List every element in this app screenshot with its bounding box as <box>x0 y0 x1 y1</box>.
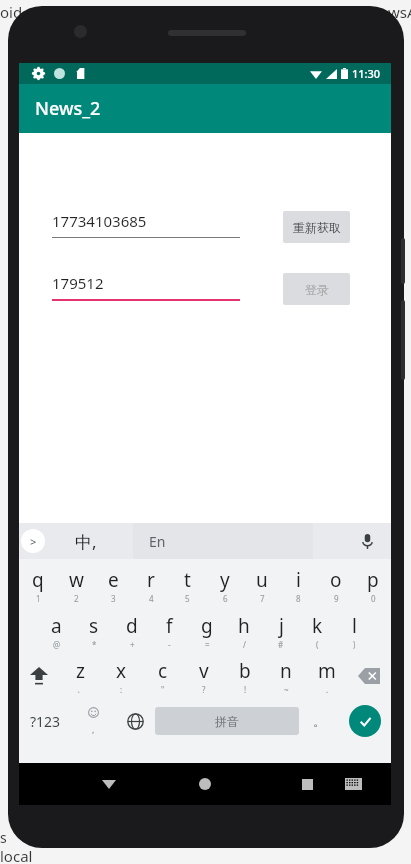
staticText: = <box>205 639 210 650</box>
staticText: @ <box>53 639 61 650</box>
button[interactable]: v <box>183 655 224 697</box>
button[interactable]: i <box>280 563 317 607</box>
staticText: 登录 <box>305 282 329 297</box>
button[interactable]: n <box>265 655 306 697</box>
button[interactable]: q <box>19 563 57 607</box>
button[interactable]: g <box>188 609 225 653</box>
button[interactable]: 登录 <box>283 273 350 305</box>
button[interactable]: ?123 <box>19 699 71 743</box>
button[interactable]: News_2 <box>19 84 391 133</box>
staticText: 。 <box>313 714 325 729</box>
staticText: w <box>69 567 84 593</box>
staticText: 1 <box>36 593 41 604</box>
staticText: ) <box>353 639 356 650</box>
button[interactable]: Change language <box>115 699 155 743</box>
button[interactable]: Recents <box>289 766 325 802</box>
staticText: / <box>243 639 246 650</box>
staticText: ? <box>202 684 206 695</box>
button[interactable]: z <box>59 655 101 697</box>
button[interactable]: s <box>75 609 113 653</box>
staticText: 8 <box>296 593 301 604</box>
button[interactable]: 。 <box>299 699 339 743</box>
button[interactable]: b <box>224 655 265 697</box>
staticText: " <box>161 684 165 695</box>
button[interactable]: m <box>306 655 347 697</box>
staticText: . <box>326 684 329 695</box>
button[interactable]: Enter <box>349 705 381 737</box>
staticText: i <box>296 567 301 593</box>
staticText: 6 <box>223 593 228 604</box>
staticText: p <box>367 567 379 593</box>
button[interactable]: y <box>206 563 243 607</box>
button[interactable]: r <box>132 563 169 607</box>
staticText: , <box>92 723 95 735</box>
staticText: - <box>168 639 171 650</box>
button[interactable]: 重新获取 <box>283 211 350 243</box>
button[interactable]: Voice input <box>357 531 377 551</box>
button[interactable]: Switch keyboard <box>335 766 371 802</box>
button[interactable]: Delete <box>347 655 391 697</box>
button[interactable]: Shift <box>19 655 59 697</box>
button[interactable]: t <box>169 563 206 607</box>
button[interactable]: o <box>317 563 354 607</box>
staticText: f <box>166 613 173 639</box>
button[interactable]: a <box>37 609 75 653</box>
button[interactable]: Home <box>187 766 223 802</box>
button[interactable]: k <box>299 609 336 653</box>
staticText: 5 <box>185 593 190 604</box>
staticText: k <box>312 613 323 639</box>
button[interactable]: l <box>336 609 373 653</box>
staticText: v <box>199 658 209 684</box>
staticText: oid <box>0 2 23 22</box>
staticText: 9 <box>334 593 339 604</box>
staticText: h <box>238 613 250 639</box>
button[interactable]: En <box>133 523 313 559</box>
staticText: u <box>256 567 268 593</box>
button[interactable]: u <box>243 563 280 607</box>
staticText: l <box>352 613 357 639</box>
staticText: ( <box>316 639 319 650</box>
button[interactable]: 中, <box>75 530 97 553</box>
staticText: # <box>278 639 284 650</box>
staticText: s <box>0 828 7 847</box>
button[interactable]: h <box>225 609 262 653</box>
staticText: local <box>0 846 33 864</box>
staticText: 17734103685 <box>52 211 147 231</box>
staticText: d <box>126 613 138 639</box>
button[interactable]: x <box>101 655 142 697</box>
staticText: c <box>158 658 168 684</box>
staticText: wsA <box>388 2 411 22</box>
button[interactable]: p <box>354 563 391 607</box>
button[interactable]: Emoji <box>71 699 115 743</box>
button[interactable]: w <box>57 563 95 607</box>
staticText: 、 <box>77 684 85 694</box>
staticText: 重新获取 <box>293 220 341 235</box>
staticText: * <box>92 639 97 650</box>
staticText: r <box>147 567 155 593</box>
button[interactable]: j <box>262 609 299 653</box>
button[interactable]: Back <box>91 766 127 802</box>
button[interactable]: Expand <box>21 529 45 553</box>
staticText: 179512 <box>52 273 104 293</box>
staticText: 11:30 <box>352 66 381 81</box>
staticText: 2 <box>74 593 79 604</box>
staticText: En <box>149 532 166 551</box>
button[interactable]: f <box>151 609 188 653</box>
staticText: n <box>280 658 292 684</box>
staticText: m <box>318 658 336 684</box>
button[interactable]: c <box>142 655 183 697</box>
button[interactable]: e <box>95 563 132 607</box>
staticText: x <box>116 658 127 684</box>
staticText: o <box>330 567 342 593</box>
staticText: > <box>30 534 37 549</box>
staticText: : <box>120 684 123 695</box>
staticText: b <box>239 658 251 684</box>
staticText: ! <box>244 684 247 695</box>
staticText: e <box>108 567 119 593</box>
button[interactable]: d <box>113 609 151 653</box>
staticText: ~ <box>284 684 289 695</box>
button[interactable]: 拼音 <box>155 707 299 735</box>
staticText: q <box>32 567 44 593</box>
staticText: + <box>130 639 135 650</box>
staticText: t <box>184 567 191 593</box>
